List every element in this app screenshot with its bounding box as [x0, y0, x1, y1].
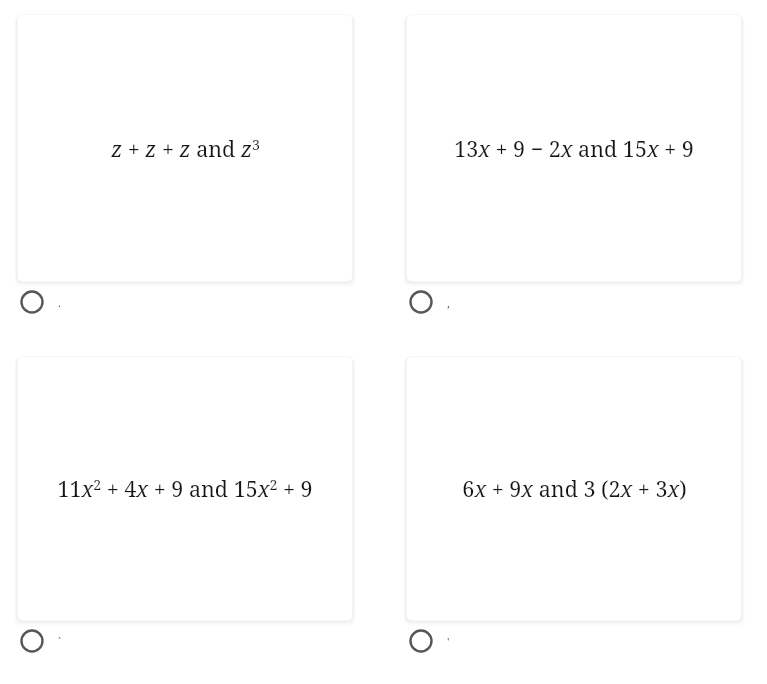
- button[interactable]: Select this answer: [17, 282, 353, 322]
- staticText: 13x + 9 − 2x and 15x + 9: [454, 134, 694, 163]
- staticText: ,: [447, 295, 450, 310]
- button[interactable]: Select this answer: [406, 621, 742, 661]
- button[interactable]: Select this answer: [406, 282, 742, 322]
- button[interactable]: 11x2 + 4x + 9 and 15x2 + 9: [17, 356, 353, 621]
- staticText: ': [447, 634, 450, 649]
- button[interactable]: 6x + 9x and 3 (2x + 3x): [406, 356, 742, 621]
- staticText: 6x + 9x and 3 (2x + 3x): [462, 474, 687, 503]
- button[interactable]: Select this answer: [17, 621, 353, 661]
- staticText: .: [58, 295, 61, 310]
- staticText: `: [58, 634, 62, 649]
- button[interactable]: z + z + z and z3: [17, 14, 353, 282]
- staticText: 11x2 + 4x + 9 and 15x2 + 9: [57, 474, 313, 503]
- staticText: z + z + z and z3: [111, 134, 260, 163]
- button[interactable]: 13x + 9 − 2x and 15x + 9: [406, 14, 742, 282]
